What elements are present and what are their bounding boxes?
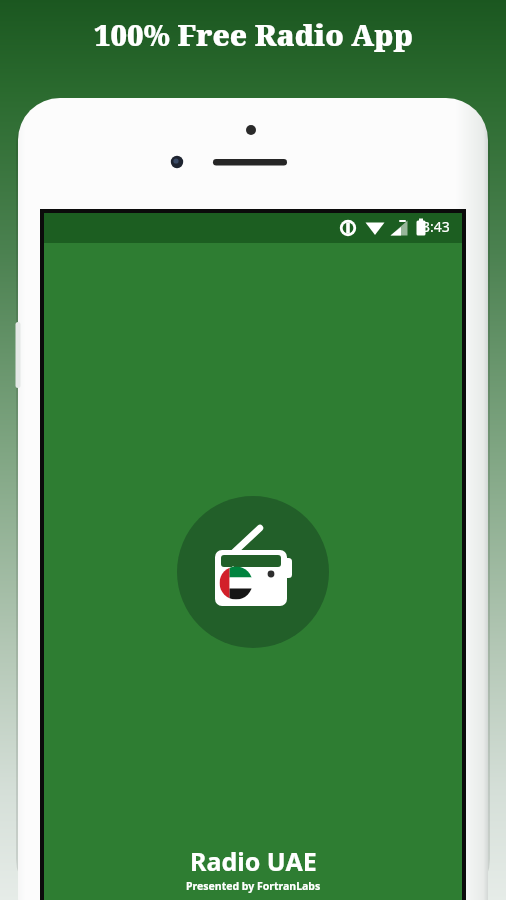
staticText: 3:43: [422, 217, 450, 236]
staticText: Radio UAE: [190, 844, 317, 878]
staticText: 100% Free Radio App: [94, 15, 413, 54]
button[interactable]: Radio UAE logo: [177, 496, 329, 648]
staticText: Presented by FortranLabs: [186, 879, 321, 893]
